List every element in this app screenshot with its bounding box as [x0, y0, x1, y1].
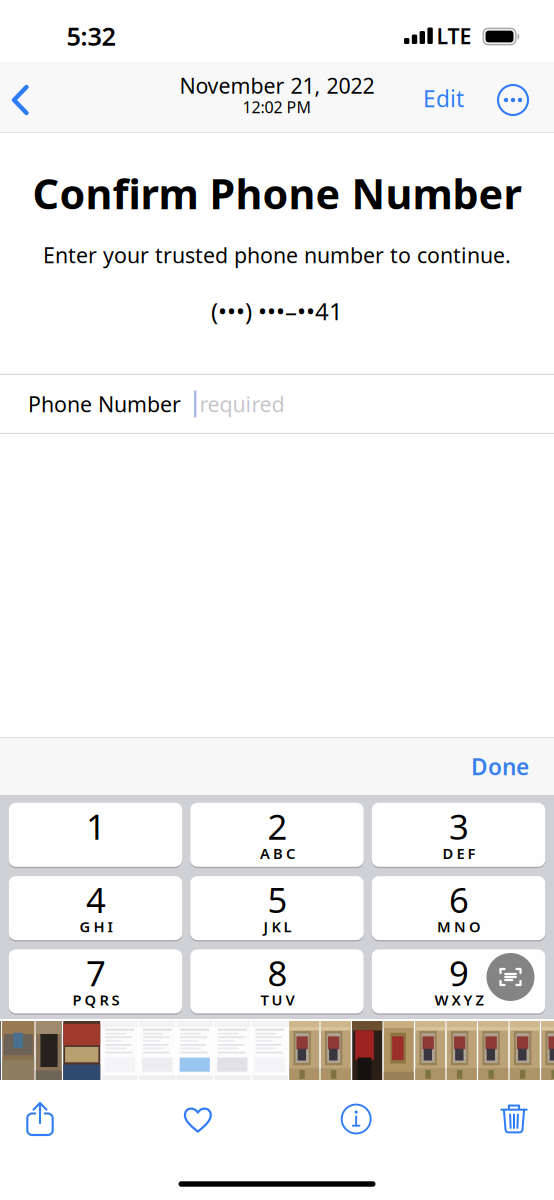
staticText: Phone Number — [28, 390, 181, 418]
staticText: P Q R S — [72, 990, 119, 1010]
button[interactable]: Scan text — [486, 953, 534, 1001]
staticText: M N O — [437, 917, 481, 936]
staticText: 8 — [267, 950, 287, 996]
staticText: T U V — [260, 990, 294, 1010]
staticText: required — [199, 390, 284, 418]
staticText: November 21, 2022 — [179, 71, 374, 100]
button[interactable]: Edit — [407, 69, 480, 127]
button[interactable]: Favorite — [158, 1090, 237, 1148]
staticText: 5:32 — [66, 19, 115, 53]
staticText: 6 — [449, 877, 469, 923]
button[interactable]: 3 — [372, 803, 545, 868]
staticText: LTE — [436, 22, 471, 50]
button[interactable]: 9 — [372, 949, 545, 1015]
button[interactable]: 5 — [190, 876, 364, 941]
staticText: 12:02 PM — [242, 96, 311, 118]
button[interactable]: Share — [1, 1090, 79, 1148]
staticText: (•••) •••–••41 — [211, 295, 343, 327]
staticText: Confirm Phone Number — [32, 166, 521, 221]
button[interactable]: 6 — [372, 876, 545, 941]
button[interactable]: 4 — [9, 876, 182, 941]
staticText: D E F — [442, 844, 475, 863]
staticText: 9 — [449, 950, 469, 996]
staticText: A B C — [260, 844, 295, 863]
button[interactable]: 7 — [9, 949, 182, 1015]
staticText: 4 — [86, 877, 106, 923]
staticText: 7 — [86, 950, 106, 996]
button[interactable]: 1 — [9, 803, 182, 868]
button[interactable]: Done — [446, 737, 554, 795]
staticText: Enter your trusted phone number to conti… — [43, 241, 511, 269]
button[interactable]: 8 — [190, 949, 364, 1015]
staticText: 5 — [267, 877, 287, 923]
staticText: G H I — [79, 917, 112, 936]
button[interactable]: Back — [0, 71, 46, 128]
staticText: 1 — [86, 803, 106, 849]
button[interactable]: Delete — [475, 1089, 553, 1148]
staticText: 3 — [449, 803, 469, 849]
button[interactable]: 2 — [190, 803, 364, 868]
button[interactable]: Info — [317, 1089, 396, 1148]
staticText: Edit — [423, 83, 464, 113]
staticText: 2 — [267, 803, 287, 849]
staticText: J K L — [263, 917, 291, 936]
staticText: Done — [471, 751, 529, 781]
button[interactable]: More options — [490, 77, 536, 123]
staticText: W X Y Z — [434, 990, 483, 1010]
